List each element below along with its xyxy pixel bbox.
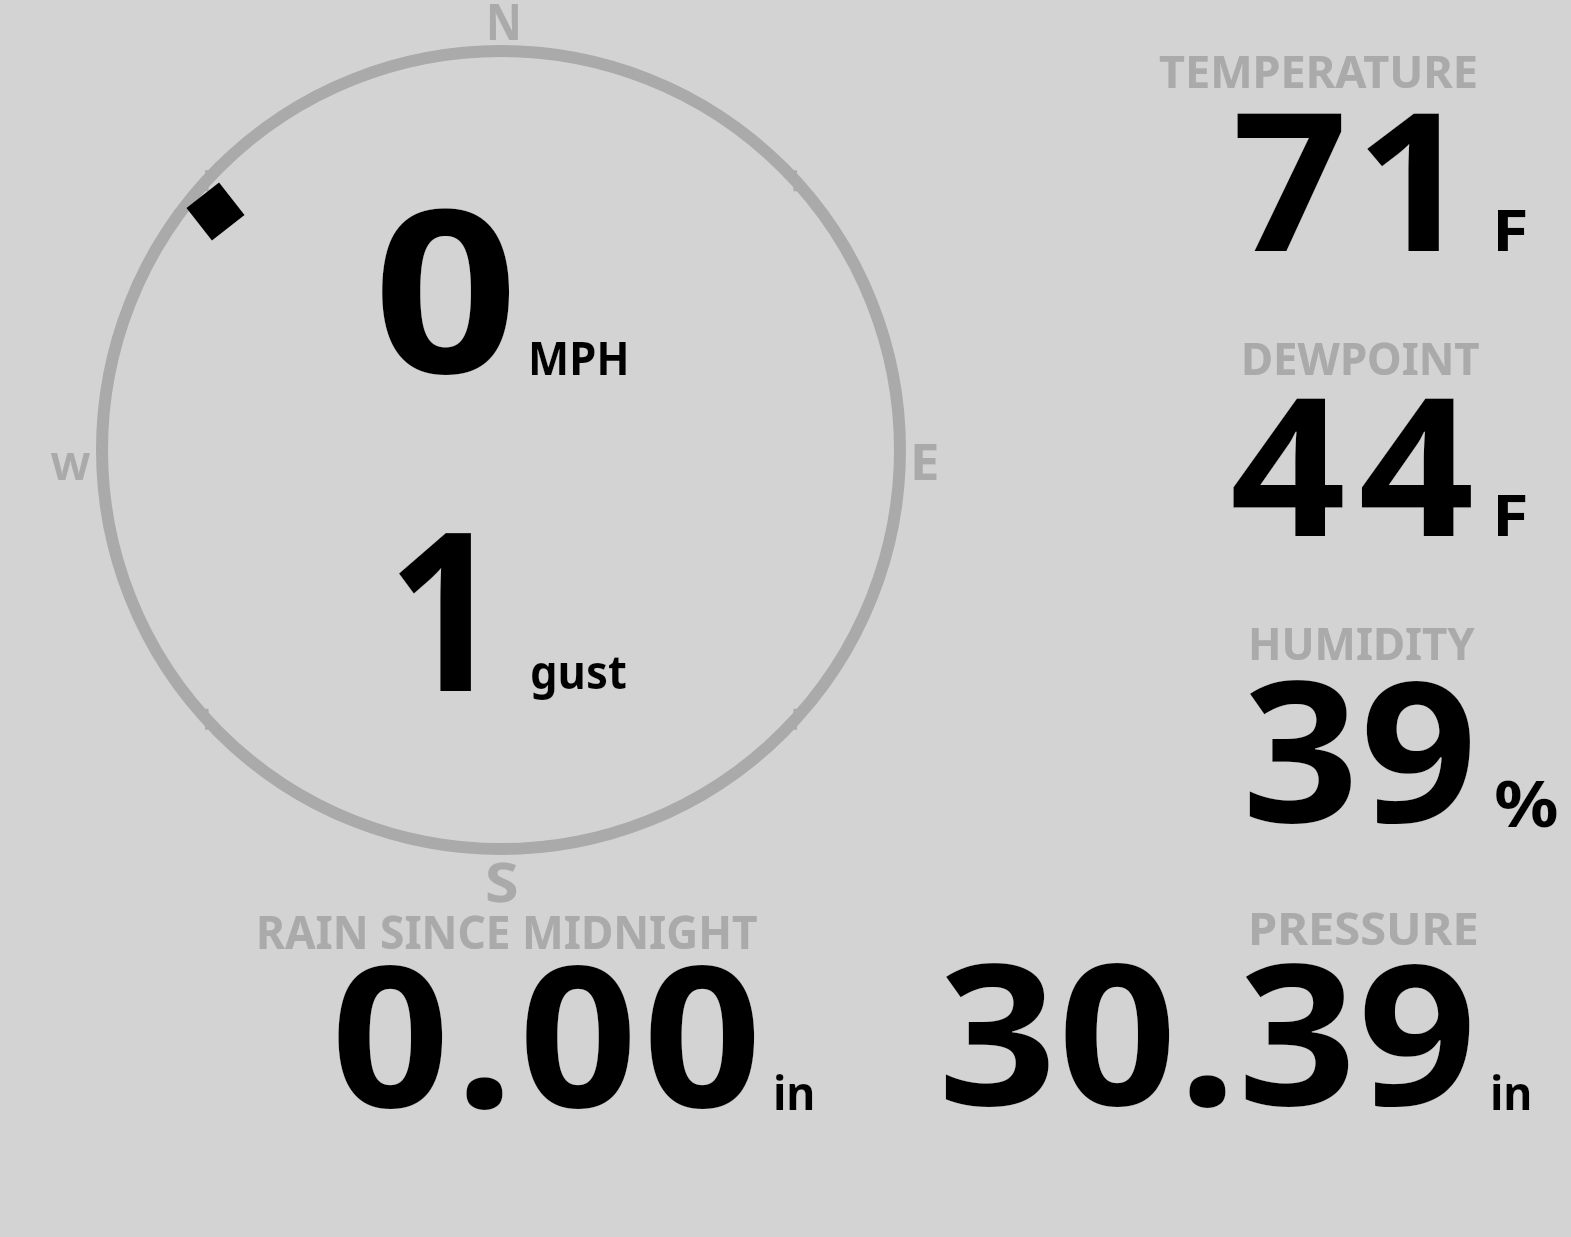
button[interactable]: Humidity 39 percent: [1000, 600, 1571, 875]
staticText: in: [773, 1060, 816, 1124]
staticText: 44: [1230, 330, 1487, 593]
button[interactable]: Wind direction compass: [96, 45, 906, 855]
staticText: 0.00: [331, 897, 768, 1164]
staticText: DEWPOINT: [1241, 327, 1480, 388]
staticText: E: [910, 427, 939, 495]
button[interactable]: Pressure 30.39 inches: [900, 890, 1571, 1140]
staticText: 71: [1232, 45, 1479, 308]
staticText: 30.39: [938, 895, 1479, 1162]
staticText: in: [1490, 1060, 1533, 1124]
staticText: S: [485, 845, 519, 917]
staticText: N: [486, 0, 522, 55]
staticText: TEMPERATURE: [1159, 40, 1478, 101]
staticText: PRESSURE: [1248, 897, 1479, 958]
staticText: MPH: [528, 326, 631, 389]
button[interactable]: Dewpoint 44 degrees Fahrenheit: [1000, 315, 1571, 590]
staticText: 39: [1242, 614, 1479, 880]
staticText: %: [1494, 759, 1559, 846]
staticText: F: [1492, 189, 1529, 268]
staticText: 0: [373, 131, 519, 439]
staticText: W: [51, 439, 90, 491]
staticText: 1: [387, 455, 504, 756]
staticText: HUMIDITY: [1248, 612, 1475, 673]
staticText: gust: [530, 640, 628, 703]
staticText: RAIN SINCE MIDNIGHT: [256, 900, 758, 963]
button[interactable]: Rain since midnight 0.00 inches: [180, 890, 860, 1140]
button[interactable]: Temperature 71 degrees Fahrenheit: [1000, 30, 1571, 305]
staticText: F: [1492, 474, 1529, 553]
